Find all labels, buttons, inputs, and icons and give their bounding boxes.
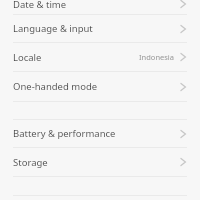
staticText: Date & time: [13, 0, 67, 11]
button[interactable]: Storage: [0, 148, 200, 176]
staticText: Language & input: [13, 22, 93, 35]
staticText: Battery & performance: [13, 127, 116, 140]
button[interactable]: Battery & performance: [0, 120, 200, 147]
button[interactable]: Locale: [0, 43, 200, 71]
button[interactable]: Language & input: [0, 15, 200, 42]
staticText: Indonesia: [139, 52, 174, 62]
staticText: Locale: [13, 51, 42, 64]
staticText: Storage: [13, 156, 48, 169]
button[interactable]: Date & time: [0, 0, 200, 14]
button[interactable]: One-handed mode: [0, 72, 200, 101]
staticText: One-handed mode: [13, 80, 98, 93]
